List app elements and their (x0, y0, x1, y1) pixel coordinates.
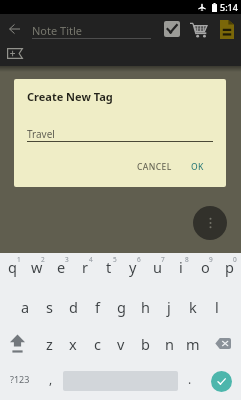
staticText: d (69, 297, 78, 317)
button[interactable]: j (157, 288, 181, 325)
button[interactable]: k (181, 288, 205, 325)
button[interactable]: z (37, 325, 61, 362)
staticText: 2 (41, 255, 45, 264)
staticText: r (82, 257, 88, 277)
staticText: n (165, 334, 174, 354)
button[interactable]: e (49, 253, 73, 288)
button[interactable]: Back (0, 14, 29, 44)
staticText: z (46, 334, 53, 354)
button[interactable]: Shopping list (185, 14, 212, 44)
staticText: OK (191, 161, 204, 173)
staticText: e (57, 257, 66, 277)
button[interactable]: CANCEL (132, 158, 177, 176)
button[interactable]: h (133, 288, 157, 325)
button[interactable]: w (25, 253, 49, 288)
staticText: x (69, 334, 77, 354)
staticText: 0 (233, 255, 237, 264)
staticText: y (129, 257, 137, 277)
staticText: g (117, 297, 126, 317)
staticText: . (188, 371, 192, 387)
button[interactable]: b (133, 325, 157, 362)
staticText: 6 (137, 255, 141, 264)
button[interactable]: l (205, 288, 229, 325)
staticText: j (167, 297, 171, 317)
button[interactable]: r (73, 253, 97, 288)
staticText: k (189, 297, 197, 317)
staticText: v (117, 334, 125, 354)
staticText: f (95, 297, 100, 317)
staticText: h (141, 297, 150, 317)
button[interactable]: q (0, 253, 25, 288)
button[interactable]: u (145, 253, 169, 288)
button[interactable]: y (121, 253, 145, 288)
staticText: o (201, 257, 210, 277)
button[interactable]: ?123 (0, 362, 39, 400)
button[interactable]: Enter (202, 362, 241, 400)
staticText: l (215, 297, 219, 317)
button[interactable]: Checklist (158, 14, 185, 44)
button[interactable]: Attach note (212, 14, 241, 44)
staticText: t (106, 257, 112, 277)
staticText: CANCEL (137, 161, 172, 173)
button[interactable]: More options (193, 206, 227, 240)
button[interactable]: d (61, 288, 85, 325)
staticText: m (186, 334, 200, 354)
staticText: ?123 (10, 373, 30, 385)
button[interactable]: p (217, 253, 241, 288)
button[interactable]: , (39, 362, 63, 400)
staticText: q (8, 257, 17, 277)
button[interactable]: o (193, 253, 217, 288)
staticText: w (31, 257, 43, 277)
staticText: 3 (65, 255, 69, 264)
staticText: u (153, 257, 162, 277)
staticText: 1 (17, 255, 21, 264)
button[interactable]: i (169, 253, 193, 288)
button[interactable]: n (157, 325, 181, 362)
button[interactable]: t (97, 253, 121, 288)
staticText: c (94, 334, 101, 354)
staticText: 9 (209, 255, 213, 264)
staticText: s (46, 297, 53, 317)
staticText: a (21, 297, 30, 317)
staticText: 5 (113, 255, 117, 264)
button[interactable]: s (37, 288, 61, 325)
button[interactable]: v (109, 325, 133, 362)
button[interactable]: f (85, 288, 109, 325)
staticText: 8 (185, 255, 189, 264)
button[interactable]: Delete (205, 325, 241, 362)
staticText: Note Title (32, 23, 83, 38)
staticText: 5:14 (220, 1, 238, 13)
staticText: i (179, 257, 183, 277)
button[interactable]: Add tag (4, 44, 26, 62)
button[interactable]: x (61, 325, 85, 362)
staticText: 4 (89, 255, 93, 264)
button[interactable]: c (85, 325, 109, 362)
staticText: Travel (27, 127, 55, 141)
staticText: b (141, 334, 150, 354)
button[interactable]: Shift (0, 325, 37, 362)
button[interactable]: . (178, 362, 202, 400)
staticText: 7 (161, 255, 165, 264)
button[interactable]: m (181, 325, 205, 362)
button[interactable]: g (109, 288, 133, 325)
staticText: , (49, 371, 53, 387)
staticText: p (225, 257, 234, 277)
button[interactable]: OK (186, 158, 209, 176)
button[interactable]: a (13, 288, 37, 325)
staticText: Create New Tag (27, 89, 113, 104)
